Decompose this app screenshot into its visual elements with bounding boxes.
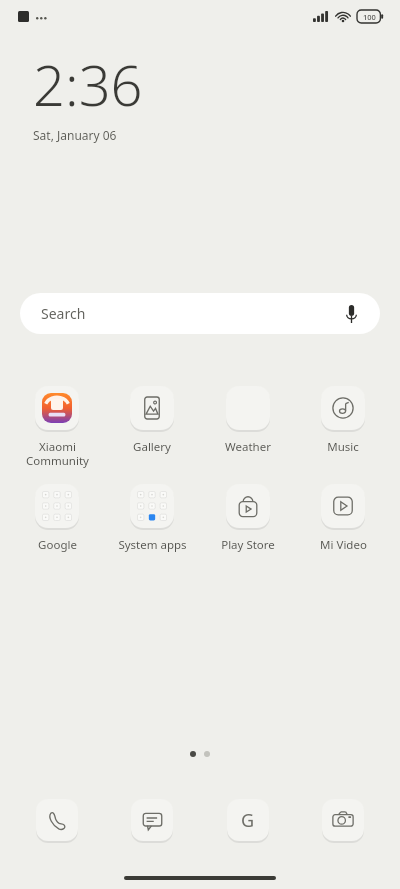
button[interactable]: System apps folder (107, 484, 197, 553)
staticText: Google (38, 537, 77, 553)
staticText: Gallery (133, 439, 171, 455)
staticText: Mi Video (320, 537, 367, 553)
staticText: 100 (363, 12, 376, 22)
staticText: G (241, 808, 255, 833)
staticText: Xiaomi Community (26, 439, 89, 468)
button[interactable]: Camera (322, 799, 364, 841)
button[interactable]: Messages (131, 799, 173, 841)
button[interactable]: Weather (203, 386, 293, 455)
staticText: System apps (118, 537, 187, 553)
staticText: Sat, January 06 (33, 127, 117, 143)
button[interactable]: Gallery (107, 386, 197, 455)
button[interactable]: Phone (36, 799, 78, 841)
button[interactable]: Google folder (12, 484, 102, 553)
button[interactable]: Xiaomi Community (12, 386, 102, 468)
staticText: 2:36 (33, 46, 143, 122)
button[interactable]: Voice search (338, 301, 364, 327)
button[interactable]: Mi Video (298, 484, 388, 553)
staticText: Music (327, 439, 359, 455)
button[interactable]: Play Store (203, 484, 293, 553)
staticText: Play Store (221, 537, 275, 553)
button[interactable]: Search (20, 293, 380, 334)
button[interactable]: Google (227, 799, 269, 841)
button[interactable]: Music (298, 386, 388, 455)
staticText: Search (41, 304, 86, 323)
staticText: Weather (225, 439, 271, 455)
